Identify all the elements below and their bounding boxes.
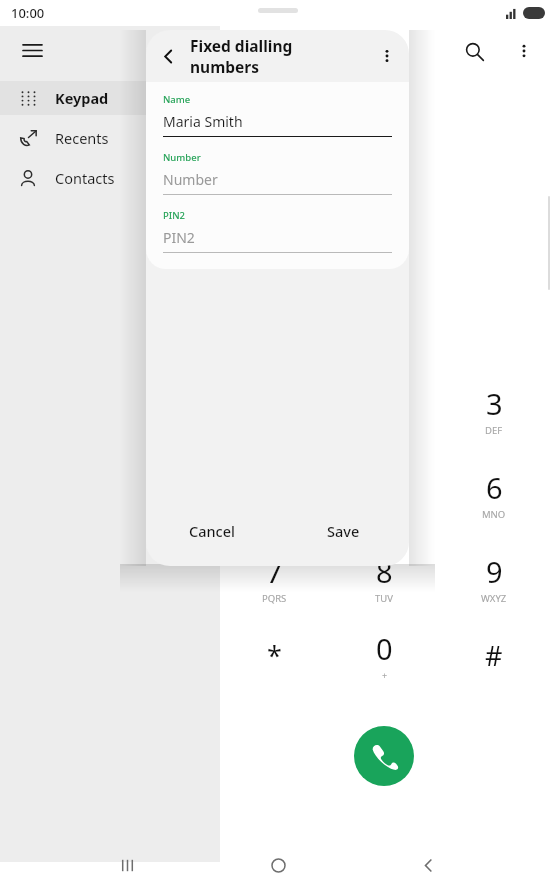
button[interactable]: Home <box>255 842 301 888</box>
button[interactable]: Cancel <box>146 508 277 554</box>
staticText: Save <box>327 521 360 541</box>
button[interactable]: * <box>226 625 322 685</box>
staticText: TUV <box>375 592 393 605</box>
staticText: PQRS <box>262 592 287 605</box>
button[interactable]: 3 <box>446 380 542 440</box>
staticText: Recents <box>55 128 109 148</box>
staticText: 3 <box>486 384 503 423</box>
button[interactable]: More options <box>365 34 409 78</box>
staticText: Number <box>163 170 218 189</box>
staticText: + <box>382 669 388 681</box>
staticText: # <box>485 637 503 674</box>
staticText: 7 <box>266 552 283 591</box>
staticText: Keypad <box>55 88 109 108</box>
staticText: Name <box>163 93 191 106</box>
button[interactable]: 0 <box>336 625 432 685</box>
staticText: PIN2 <box>163 228 195 247</box>
staticText: 9 <box>486 552 503 591</box>
staticText: 10:00 <box>11 4 45 22</box>
staticText: MNO <box>482 508 506 521</box>
button[interactable]: # <box>446 625 542 685</box>
button[interactable]: 7 <box>226 548 322 608</box>
button[interactable]: 9 <box>446 548 542 608</box>
button[interactable]: 8 <box>336 548 432 608</box>
button[interactable]: Search <box>449 26 499 76</box>
staticText: WXYZ <box>481 592 507 605</box>
staticText: Number <box>163 151 201 164</box>
staticText: Maria Smith <box>163 112 243 131</box>
staticText: Cancel <box>189 521 235 541</box>
button[interactable]: More options <box>499 26 549 76</box>
staticText: PIN2 <box>163 209 185 222</box>
button[interactable]: Save <box>277 508 409 554</box>
button[interactable]: Keypad <box>0 81 204 115</box>
button[interactable]: 2 <box>336 380 432 440</box>
staticText: Fixed dialling numbers <box>190 35 365 77</box>
button[interactable]: Recent apps <box>104 842 150 888</box>
staticText: DEF <box>485 424 503 437</box>
button[interactable]: Back <box>405 842 451 888</box>
staticText: * <box>267 637 282 674</box>
staticText: 0 <box>376 629 393 668</box>
button[interactable]: Contacts <box>0 161 204 195</box>
button[interactable]: Back <box>146 34 190 78</box>
staticText: 6 <box>486 468 503 507</box>
button[interactable]: 5 <box>336 464 432 524</box>
staticText: Contacts <box>55 168 115 188</box>
button[interactable]: Call <box>354 726 414 786</box>
button[interactable]: Recents <box>0 121 204 155</box>
button[interactable]: 6 <box>446 464 542 524</box>
staticText: 8 <box>376 552 393 591</box>
button[interactable]: Open navigation menu <box>8 26 56 74</box>
